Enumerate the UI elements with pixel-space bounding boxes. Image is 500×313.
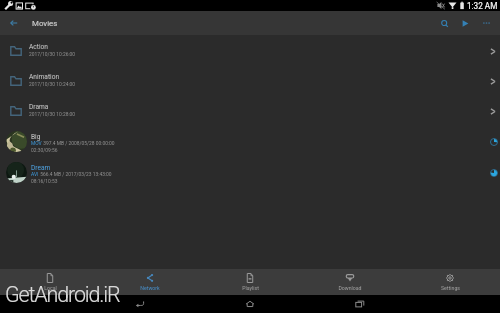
- staticText: GetAndroid.iR: [5, 282, 120, 307]
- button[interactable]: Play: [455, 11, 476, 35]
- button[interactable]: Action: [0, 36, 500, 66]
- button[interactable]: Network: [100, 269, 200, 295]
- button[interactable]: Animation: [0, 66, 500, 96]
- staticText: MOV: [31, 140, 42, 146]
- staticText: Dream: [31, 164, 51, 172]
- staticText: Playlist: [242, 285, 259, 291]
- staticText: Action: [29, 43, 48, 51]
- staticText: 566.4 MB / 2017/03/23 13:43:00: [39, 171, 112, 177]
- button[interactable]: Download: [300, 269, 400, 295]
- button[interactable]: Recents: [305, 295, 415, 313]
- staticText: 2017/10/30 10:28:00: [29, 111, 76, 117]
- button[interactable]: Local: [0, 269, 100, 295]
- button[interactable]: Home: [195, 295, 305, 313]
- staticText: 2017/10/30 10:26:00: [29, 51, 76, 57]
- button[interactable]: Big: [0, 126, 500, 157]
- button[interactable]: Back: [0, 11, 28, 35]
- button[interactable]: Back: [85, 295, 195, 313]
- button[interactable]: Playlist: [200, 269, 300, 295]
- staticText: Animation: [29, 73, 60, 81]
- button[interactable]: Dream: [0, 157, 500, 188]
- staticText: Local: [44, 285, 57, 291]
- staticText: 2017/10/30 10:24:00: [29, 81, 76, 87]
- button[interactable]: More options: [476, 11, 497, 35]
- staticText: Drama: [29, 103, 49, 111]
- staticText: 02:30/09:56: [31, 147, 58, 153]
- staticText: 08:16/10:53: [31, 178, 58, 184]
- staticText: 397.4 MB / 2008/05/28 00:00:00: [42, 140, 115, 146]
- button[interactable]: Search: [434, 11, 455, 35]
- button[interactable]: Drama: [0, 96, 500, 126]
- staticText: Network: [140, 285, 160, 291]
- staticText: 1:32 AM: [467, 1, 498, 11]
- staticText: AVI: [31, 171, 39, 177]
- staticText: Download: [338, 285, 362, 291]
- staticText: Settings: [441, 285, 460, 291]
- button[interactable]: Settings: [400, 269, 500, 295]
- staticText: Movies: [32, 19, 58, 28]
- staticText: Big: [31, 133, 41, 141]
